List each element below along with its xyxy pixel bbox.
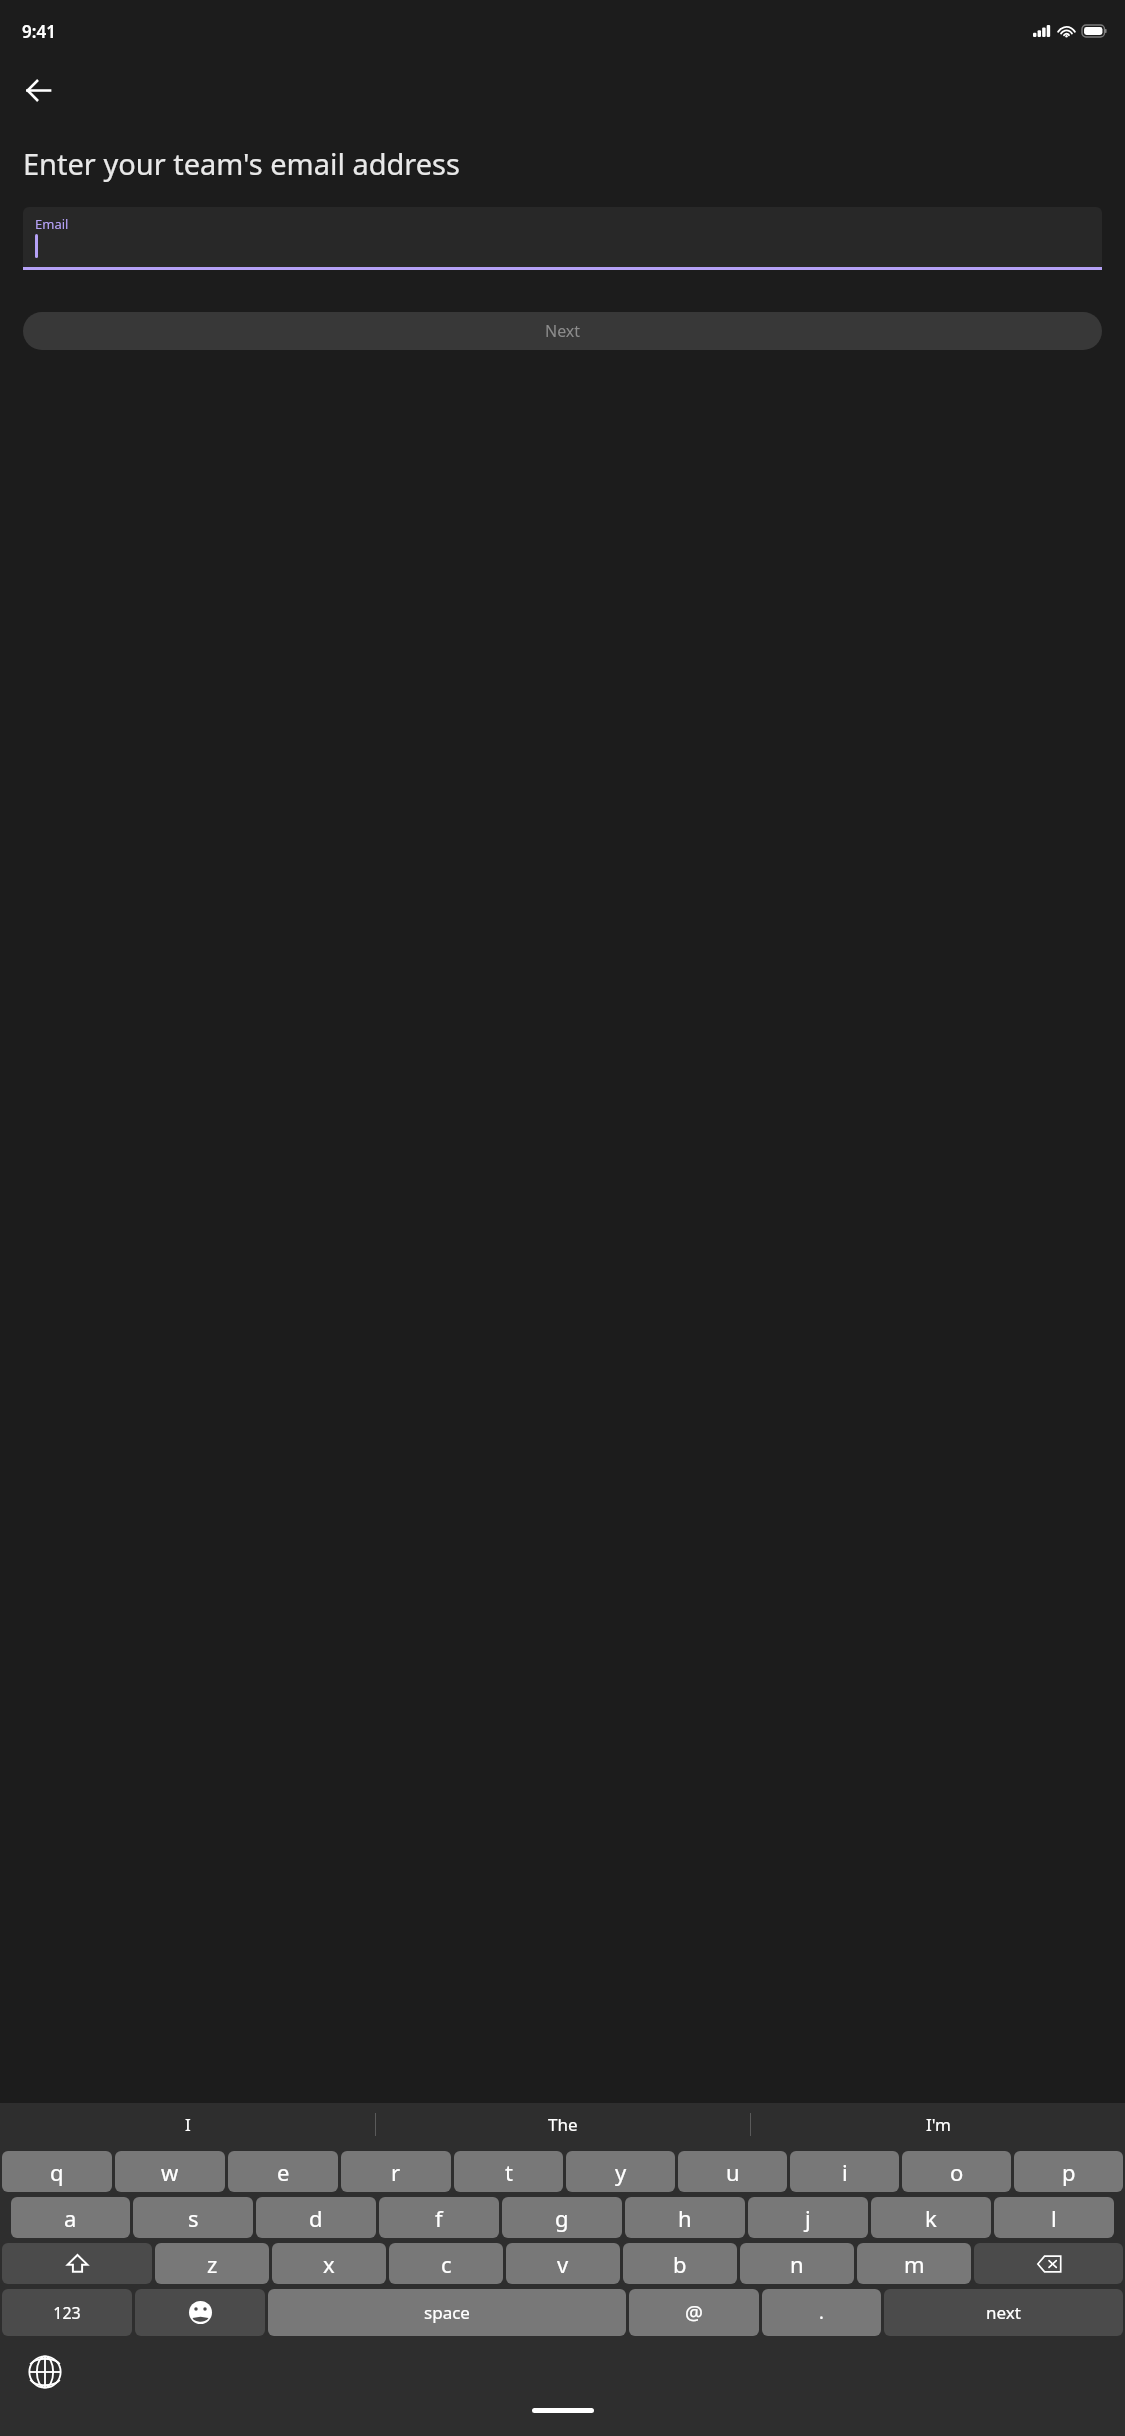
staticText: y xyxy=(615,2157,627,2187)
button[interactable]: a xyxy=(11,2197,130,2238)
staticText: @ xyxy=(685,2299,703,2326)
button[interactable]: c xyxy=(389,2243,503,2284)
button[interactable]: space xyxy=(268,2289,626,2336)
button[interactable]: b xyxy=(623,2243,737,2284)
staticText: a xyxy=(64,2203,77,2233)
staticText: w xyxy=(161,2157,179,2187)
staticText: i xyxy=(842,2157,848,2187)
staticText: The xyxy=(548,2113,578,2136)
button[interactable]: g xyxy=(502,2197,622,2238)
button[interactable]: d xyxy=(256,2197,376,2238)
button[interactable]: Emoji xyxy=(135,2289,265,2336)
staticText: f xyxy=(435,2203,443,2233)
staticText: g xyxy=(555,2203,569,2233)
button[interactable]: i xyxy=(790,2151,899,2192)
staticText: I xyxy=(185,2113,191,2136)
staticText: l xyxy=(1051,2203,1057,2233)
button[interactable]: x xyxy=(272,2243,386,2284)
button[interactable]: next xyxy=(884,2289,1123,2336)
staticText: u xyxy=(726,2157,740,2187)
staticText: x xyxy=(323,2249,335,2279)
button[interactable]: t xyxy=(454,2151,563,2192)
button[interactable]: n xyxy=(740,2243,854,2284)
staticText: k xyxy=(925,2203,937,2233)
button[interactable]: f xyxy=(379,2197,499,2238)
staticText: v xyxy=(557,2249,569,2279)
staticText: Email xyxy=(35,215,69,233)
staticText: space xyxy=(424,2301,470,2324)
button[interactable]: k xyxy=(871,2197,991,2238)
button[interactable]: . xyxy=(762,2289,881,2336)
staticText: h xyxy=(678,2203,692,2233)
button[interactable]: w xyxy=(115,2151,225,2192)
button[interactable]: l xyxy=(994,2197,1114,2238)
button[interactable]: s xyxy=(133,2197,253,2238)
button[interactable]: h xyxy=(625,2197,745,2238)
staticText: q xyxy=(50,2157,64,2187)
staticText: o xyxy=(950,2157,964,2187)
staticText: 9:41 xyxy=(22,20,56,43)
button[interactable]: I'm xyxy=(751,2103,1125,2145)
button[interactable]: Change keyboard xyxy=(22,2349,68,2395)
staticText: next xyxy=(986,2301,1021,2324)
staticText: Next xyxy=(545,320,581,342)
button[interactable]: r xyxy=(341,2151,451,2192)
staticText: p xyxy=(1062,2157,1076,2187)
button[interactable]: z xyxy=(155,2243,269,2284)
button[interactable]: y xyxy=(566,2151,675,2192)
staticText: r xyxy=(391,2157,401,2187)
button[interactable]: o xyxy=(902,2151,1011,2192)
button[interactable]: @ xyxy=(629,2289,759,2336)
button[interactable]: Shift xyxy=(2,2243,152,2284)
staticText: m xyxy=(904,2249,925,2279)
button[interactable]: e xyxy=(228,2151,338,2192)
staticText: z xyxy=(207,2249,218,2279)
staticText: n xyxy=(790,2249,804,2279)
button[interactable]: q xyxy=(2,2151,112,2192)
staticText: t xyxy=(505,2157,513,2187)
button[interactable]: j xyxy=(748,2197,868,2238)
staticText: d xyxy=(309,2203,323,2233)
button[interactable]: v xyxy=(506,2243,620,2284)
button[interactable]: Backspace xyxy=(974,2243,1123,2284)
button[interactable]: I xyxy=(0,2103,375,2145)
staticText: c xyxy=(441,2249,452,2279)
button[interactable]: The xyxy=(376,2103,750,2145)
staticText: 123 xyxy=(53,2302,81,2324)
staticText: e xyxy=(277,2157,290,2187)
staticText: b xyxy=(673,2249,687,2279)
button[interactable]: m xyxy=(857,2243,971,2284)
staticText: . xyxy=(819,2300,824,2325)
staticText: j xyxy=(805,2203,811,2233)
button[interactable]: Email xyxy=(23,207,1102,267)
staticText: I'm xyxy=(926,2113,951,2136)
staticText: s xyxy=(188,2203,199,2233)
button[interactable]: p xyxy=(1014,2151,1123,2192)
button[interactable]: 123 xyxy=(2,2289,132,2336)
button[interactable]: u xyxy=(678,2151,787,2192)
staticText: Enter your team's email address xyxy=(23,144,1085,183)
button[interactable]: Back xyxy=(10,62,66,118)
button[interactable]: Next xyxy=(23,312,1102,350)
